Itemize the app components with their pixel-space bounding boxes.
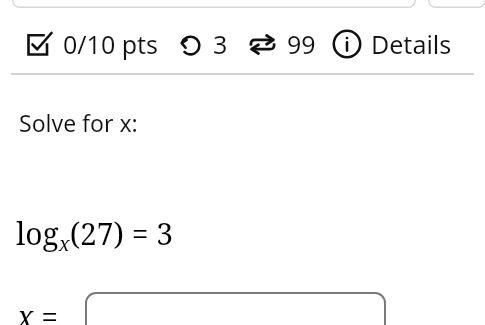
staticText: 99 [287, 27, 316, 61]
staticText: 3 [213, 27, 228, 61]
staticText: x = [17, 296, 58, 325]
staticText: Solve for x: [19, 107, 138, 138]
other: Swap problem [248, 30, 277, 59]
button[interactable]: Details [332, 27, 452, 61]
other: Points [27, 32, 52, 57]
button[interactable]: Points [27, 27, 159, 61]
staticText: 0/10 pts [63, 27, 159, 61]
button[interactable] [428, 0, 485, 8]
staticText: Details [371, 27, 452, 61]
staticText: logx(27) = 3 [16, 213, 174, 257]
other: Details [332, 29, 362, 59]
button[interactable]: Attempts [177, 27, 228, 61]
other: Attempts [177, 31, 203, 57]
button[interactable]: Swap problem [248, 27, 316, 61]
button[interactable] [12, 0, 416, 8]
button[interactable]: Answer input [85, 292, 386, 325]
